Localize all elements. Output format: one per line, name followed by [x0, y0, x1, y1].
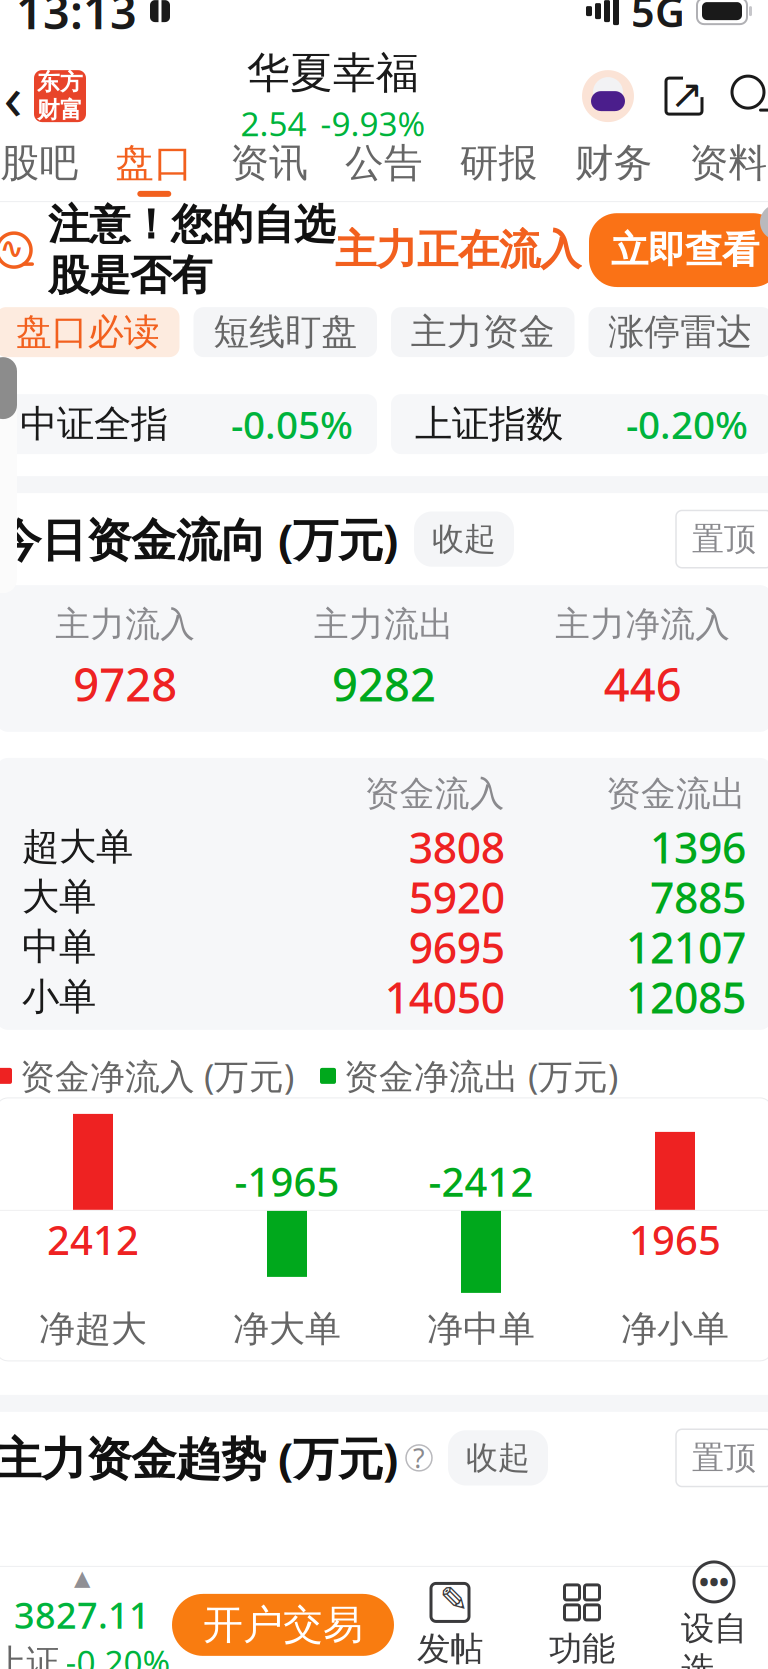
staticText: 13:13 — [16, 0, 137, 42]
staticText: 资金流入 — [365, 773, 505, 815]
staticText: 发帖 — [417, 1628, 483, 1669]
staticText: 财务 — [575, 139, 653, 187]
staticText: 华夏幸福 — [247, 47, 419, 99]
staticText: -0.20% — [65, 1640, 170, 1669]
button[interactable]: 盘口 — [97, 136, 212, 200]
button[interactable]: Back — [0, 66, 34, 126]
staticText: ‹ — [3, 55, 22, 137]
staticText: 3808 — [409, 819, 505, 875]
button[interactable]: 股吧 — [0, 136, 97, 200]
staticText: ? — [413, 1440, 425, 1476]
button[interactable]: Share — [660, 72, 708, 120]
staticText: ▲ — [74, 1566, 90, 1590]
button[interactable]: 财务 — [556, 136, 671, 200]
button[interactable]: 盘口必读 — [0, 307, 179, 357]
staticText: 小单 — [22, 974, 96, 1020]
staticText: 5920 — [409, 869, 505, 925]
button[interactable]: Search — [728, 72, 768, 120]
staticText: 净中单 — [427, 1307, 535, 1351]
staticText: 大单 — [22, 874, 96, 920]
staticText: ∿ — [0, 231, 24, 265]
staticText: 中证全指 — [20, 401, 168, 447]
staticText: 净超大 — [39, 1307, 147, 1351]
button[interactable]: 资料 — [671, 136, 768, 200]
button[interactable]: 公告 — [327, 136, 441, 200]
staticText: 东方 — [37, 68, 83, 96]
button[interactable]: 主力资金 — [391, 307, 574, 357]
staticText: -9.93% — [320, 101, 425, 145]
staticText: 12107 — [626, 919, 746, 975]
button[interactable]: 置顶 — [676, 510, 768, 568]
staticText: 主力流入 — [55, 603, 195, 646]
staticText: 公告 — [345, 139, 423, 187]
staticText: -0.20% — [626, 398, 748, 450]
staticText: 置顶 — [692, 519, 756, 559]
button[interactable]: ✎ — [402, 1570, 498, 1669]
staticText: 立即查看 — [611, 227, 759, 273]
staticText: 2.54 — [240, 101, 306, 145]
button[interactable]: 上证指数 — [391, 394, 768, 454]
button[interactable]: Close banner — [760, 204, 768, 240]
staticText: 盘口必读 — [16, 310, 160, 354]
staticText: 9695 — [409, 919, 505, 975]
button[interactable]: 短线盯盘 — [193, 307, 377, 357]
staticText: ✎ — [439, 1580, 468, 1619]
staticText: 上证 — [0, 1641, 59, 1669]
staticText: -0.05% — [231, 398, 353, 450]
staticText: 资讯 — [230, 139, 308, 187]
staticText: 上证指数 — [415, 401, 563, 447]
button[interactable]: 研报 — [441, 136, 556, 200]
staticText: 超大单 — [22, 824, 133, 870]
staticText: 资金流出 — [606, 773, 746, 815]
staticText: 主力正在流入 — [335, 225, 581, 275]
staticText: 446 — [604, 654, 682, 714]
staticText: 今日资金流向 (万元) — [0, 509, 398, 569]
button[interactable]: ∿ — [0, 204, 768, 296]
button[interactable]: AI assistant — [580, 68, 636, 124]
staticText: 资料 — [690, 139, 768, 187]
staticText: 3827.11 — [14, 1591, 150, 1639]
staticText: 7885 — [650, 869, 746, 925]
button[interactable]: 置顶 — [676, 1429, 768, 1486]
staticText: 收起 — [466, 1438, 530, 1477]
staticText: 中单 — [22, 924, 96, 970]
staticText: 主力资金趋势 (万元) — [0, 1428, 398, 1488]
staticText: 注意！您的自选股是否有 — [48, 199, 335, 301]
staticText: 主力资金 — [411, 310, 555, 354]
staticText: 股吧 — [0, 139, 78, 187]
button[interactable]: 开户交易 — [172, 1594, 394, 1656]
staticText: 盘口 — [115, 139, 193, 187]
staticText: ••• — [699, 1564, 729, 1600]
button[interactable]: 涨停雷达 — [588, 307, 768, 357]
staticText: ↗ — [670, 71, 704, 117]
staticText: -2412 — [428, 1155, 533, 1208]
staticText: 短线盯盘 — [213, 310, 357, 354]
staticText: 14050 — [385, 969, 505, 1025]
button[interactable]: East Money — [34, 70, 86, 122]
button[interactable]: ▲ — [0, 1570, 172, 1669]
staticText: ✕ — [764, 204, 768, 240]
staticText: 置顶 — [692, 1438, 756, 1477]
button[interactable]: ••• — [666, 1570, 762, 1669]
staticText: 5G — [631, 0, 685, 39]
staticText: 2412 — [47, 1213, 139, 1266]
staticText: 开户交易 — [203, 1600, 363, 1649]
staticText: 研报 — [460, 139, 538, 187]
staticText: 12085 — [626, 969, 746, 1025]
staticText: 主力净流入 — [555, 603, 730, 646]
staticText: 功能 — [549, 1628, 615, 1669]
staticText: 收起 — [432, 519, 496, 559]
staticText: 9282 — [332, 654, 436, 714]
staticText: 9728 — [73, 654, 177, 714]
staticText: 财富 — [37, 96, 83, 124]
staticText: 资金净流出 (万元) — [344, 1053, 618, 1099]
button[interactable]: 资讯 — [212, 136, 327, 200]
staticText: 涨停雷达 — [608, 310, 752, 354]
button[interactable]: 收起 — [448, 1430, 548, 1485]
button[interactable]: 功能 — [534, 1570, 630, 1669]
button[interactable]: 中证全指 — [0, 394, 377, 454]
staticText: -1965 — [234, 1155, 339, 1208]
button[interactable]: 收起 — [414, 511, 514, 567]
staticText: 1396 — [650, 819, 746, 875]
staticText: 1965 — [629, 1213, 721, 1266]
